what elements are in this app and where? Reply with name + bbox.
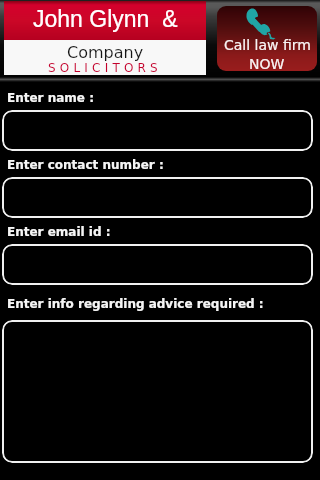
staticText: NOW: [249, 56, 285, 71]
staticText: John Glynn &: [33, 6, 178, 32]
button[interactable]: [2, 320, 313, 463]
button[interactable]: [2, 244, 313, 285]
staticText: SOLICITORS: [48, 61, 162, 75]
staticText: Call law firm: [224, 37, 311, 53]
staticText: Enter email id :: [7, 225, 111, 239]
staticText: Enter name :: [7, 91, 94, 105]
button[interactable]: [2, 177, 313, 218]
button[interactable]: [2, 110, 313, 151]
other: Call law firm now: [245, 7, 277, 40]
staticText: Enter contact number :: [7, 158, 164, 172]
staticText: Enter info regarding advice required :: [7, 297, 264, 311]
staticText: Company: [67, 43, 144, 62]
button[interactable]: Call law firm now: [217, 6, 317, 71]
